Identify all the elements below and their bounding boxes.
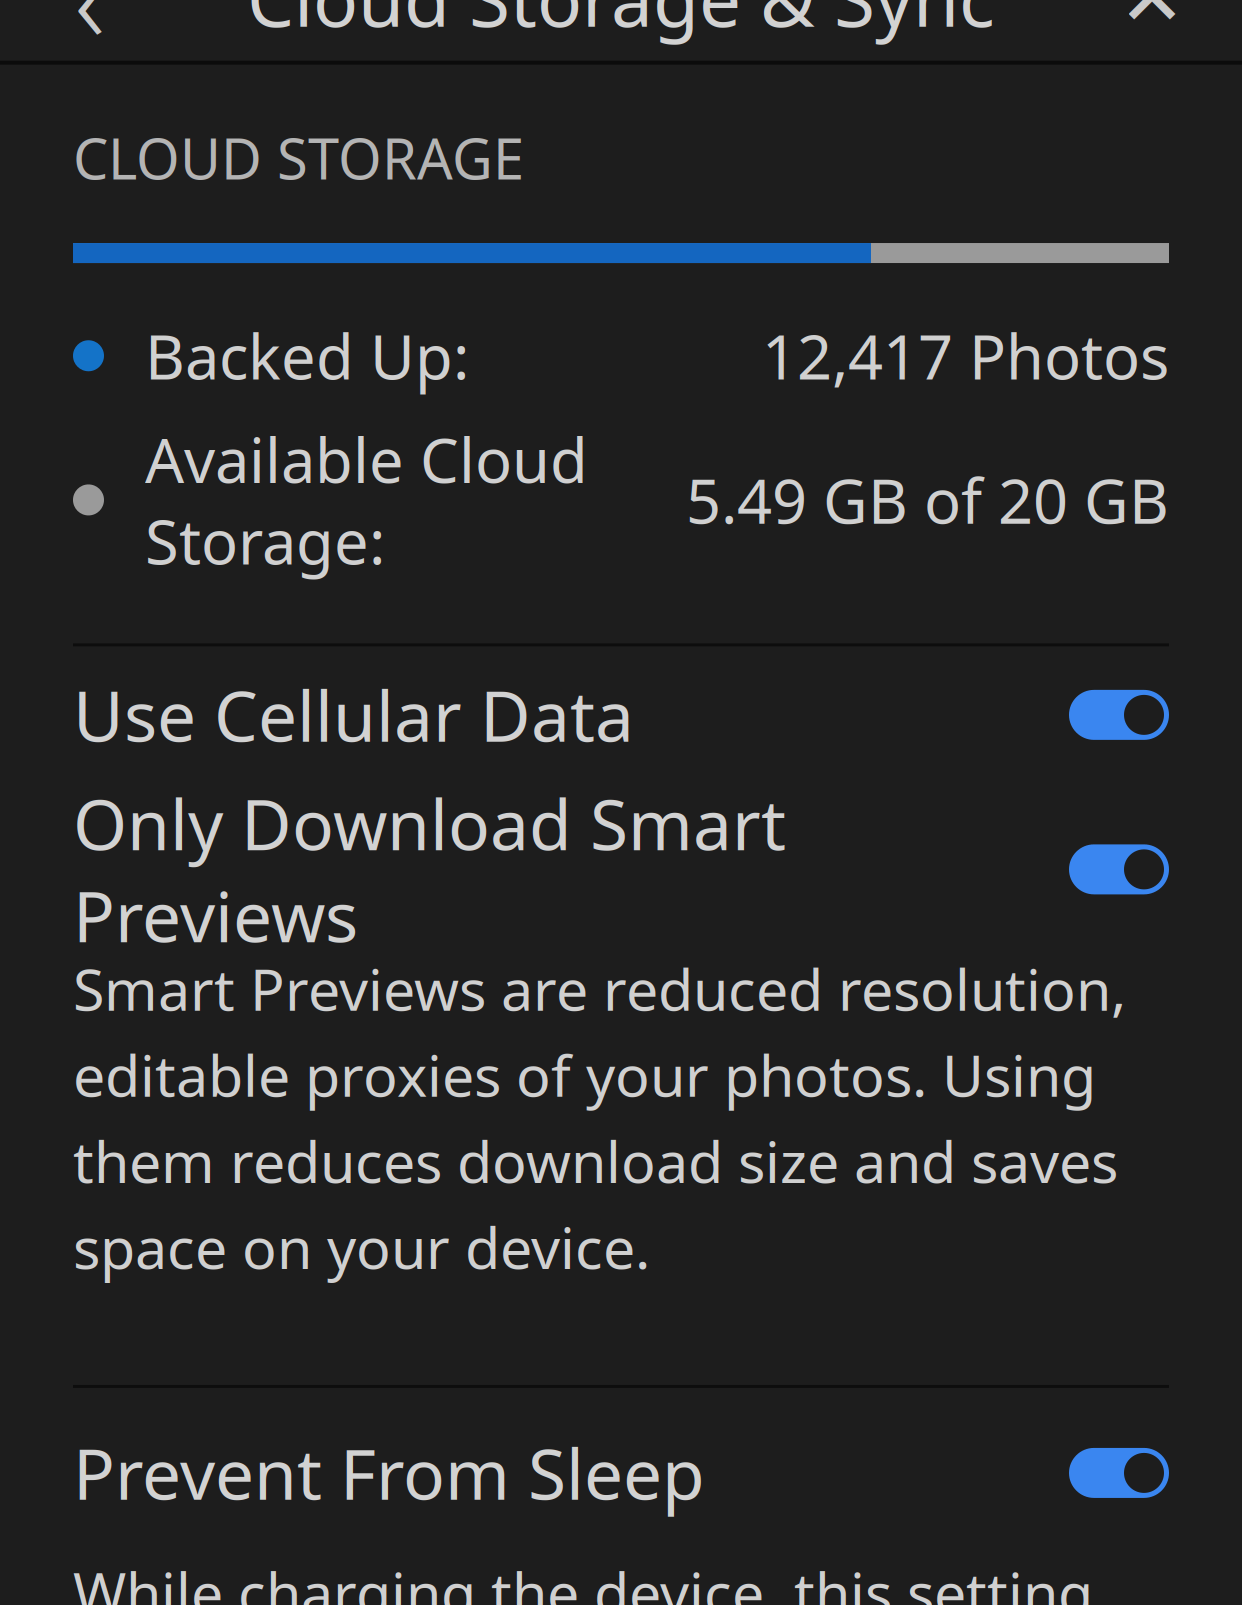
staticText: Available Cloud Storage: [145, 418, 588, 581]
button[interactable]: Only Download Smart Previews [14, 777, 1228, 961]
staticText: CLOUD STORAGE [73, 121, 524, 195]
staticText: Only Download Smart Previews [73, 777, 786, 961]
staticText: 5.49 GB of 20 GB [686, 459, 1169, 541]
staticText: Smart Previews are reduced resolution, e… [73, 950, 1126, 1285]
staticText: ✕ [1118, 0, 1185, 43]
button[interactable]: Close [1092, 0, 1212, 61]
button[interactable]: Back [30, 0, 150, 61]
staticText: Prevent From Sleep [73, 1427, 705, 1519]
button[interactable]: Prevent From Sleep [14, 1427, 1228, 1519]
button[interactable]: Use Cellular Data [14, 669, 1228, 761]
staticText: Cloud Storage & Sync [247, 0, 995, 47]
staticText: While charging the device, this setting … [73, 1554, 1110, 1605]
staticText: 12,417 Photos [762, 315, 1169, 396]
staticText: Backed Up: [145, 315, 469, 396]
staticText: ‹ [74, 0, 105, 76]
staticText: Use Cellular Data [73, 669, 634, 761]
